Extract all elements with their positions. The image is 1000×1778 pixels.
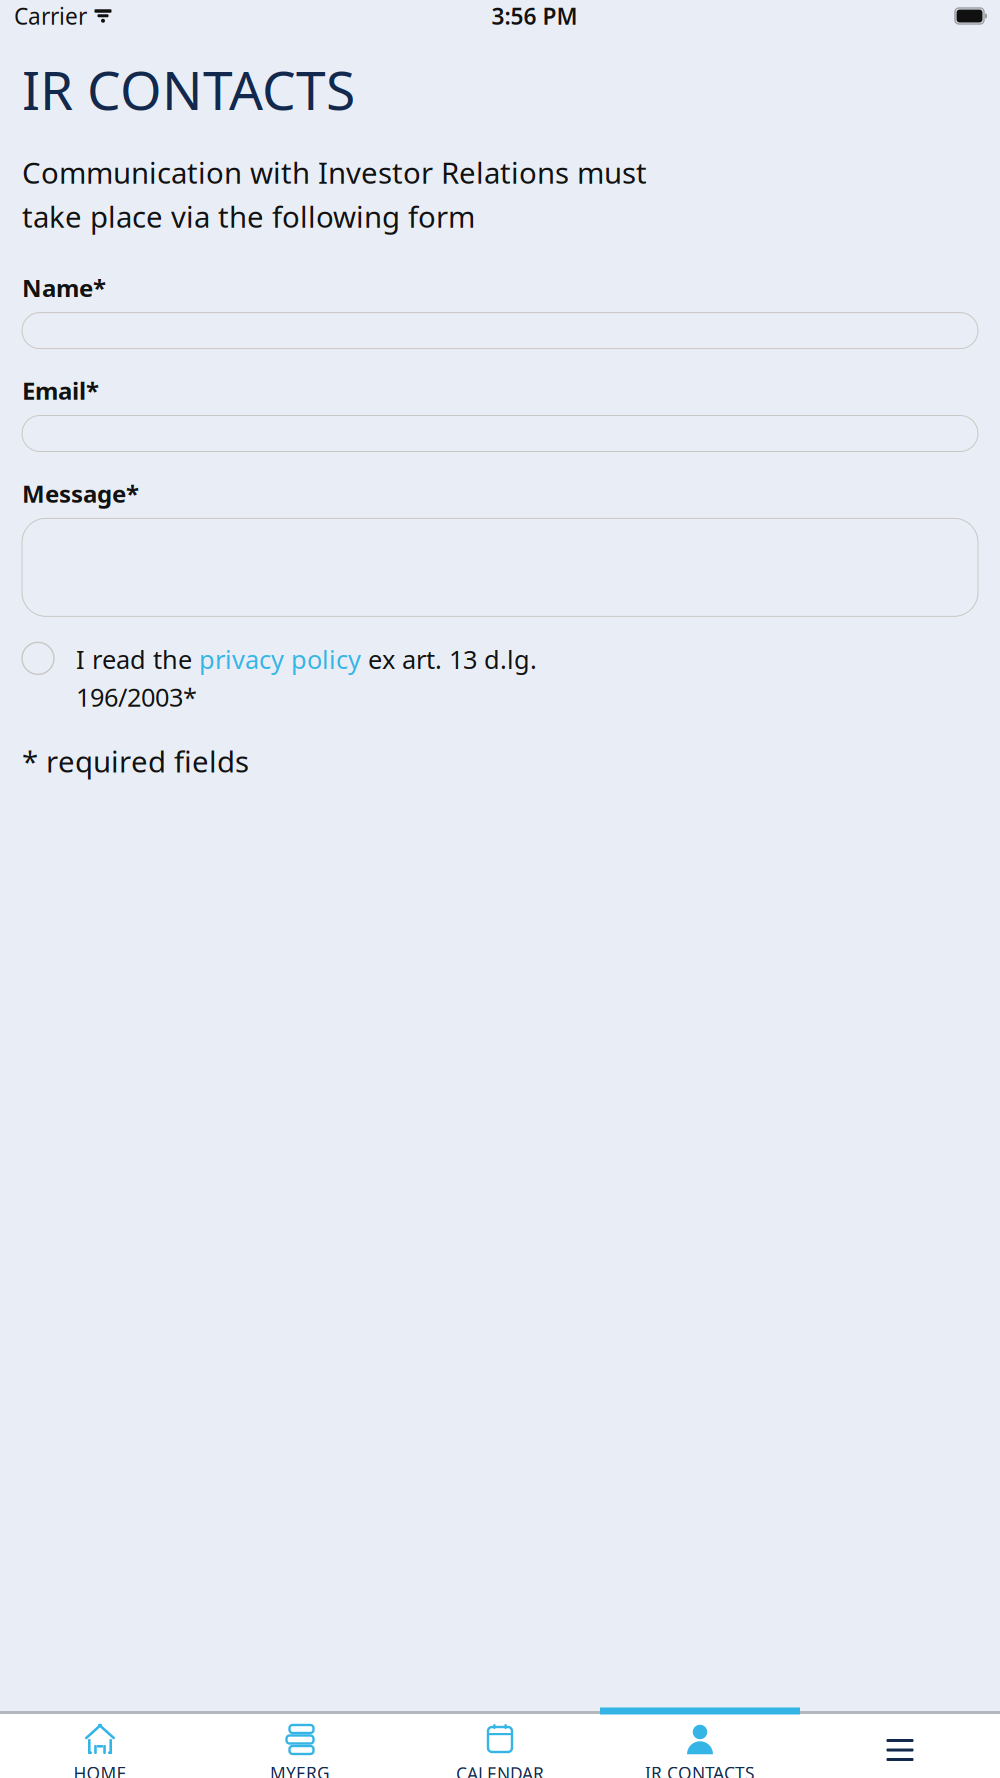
staticText: Email* — [22, 375, 99, 406]
button[interactable] — [22, 415, 978, 451]
button[interactable] — [22, 518, 978, 616]
staticText: Message* — [22, 477, 139, 509]
staticText: * required fields — [22, 742, 249, 781]
staticText: CALENDAR — [456, 1762, 544, 1778]
button[interactable]: Accept privacy policy — [22, 642, 54, 674]
button[interactable] — [22, 313, 978, 349]
staticText: Name* — [22, 272, 106, 304]
staticText: 3:56 PM — [491, 1, 577, 31]
staticText: Carrier — [14, 1, 87, 31]
staticText: take place via the following form — [22, 197, 475, 236]
staticText: ex art. 13 d.lg. — [361, 642, 537, 676]
staticText: IR CONTACTS — [22, 54, 355, 125]
button[interactable]: IR CONTACTS — [600, 1707, 800, 1778]
staticText: HOME — [73, 1761, 126, 1778]
staticText: privacy policy — [199, 642, 361, 676]
button[interactable]: MYERG — [200, 1707, 400, 1778]
staticText: Communication with Investor Relations mu… — [22, 153, 647, 192]
button[interactable]: CALENDAR — [400, 1707, 600, 1778]
button[interactable]: HOME — [0, 1707, 200, 1778]
staticText: IR CONTACTS — [645, 1761, 755, 1778]
button[interactable]: privacy policy — [199, 642, 361, 676]
staticText: I read the — [76, 642, 199, 676]
staticText: MYERG — [270, 1761, 330, 1778]
staticText: 196/2003* — [76, 680, 197, 714]
button[interactable]: Menu — [800, 1714, 1000, 1778]
